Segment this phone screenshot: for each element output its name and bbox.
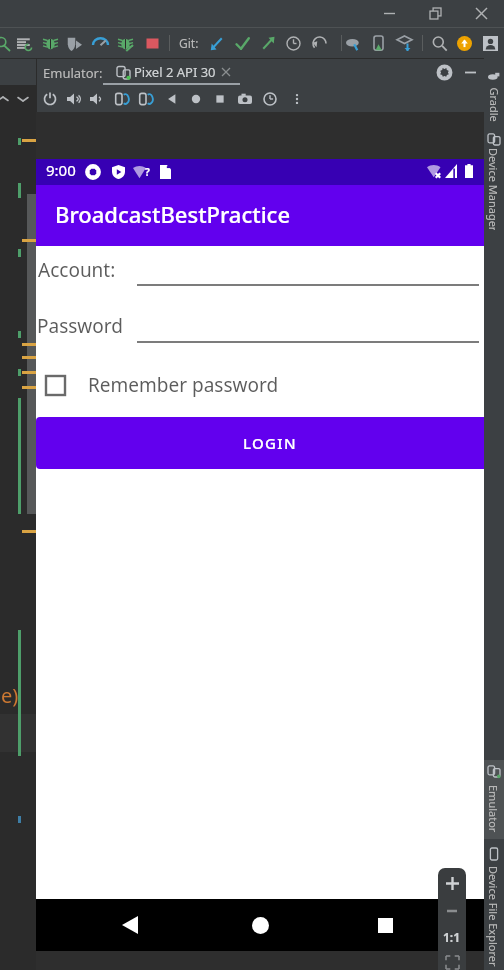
button[interactable]: Minimize [366, 0, 412, 27]
button[interactable]: Rotate right [134, 85, 158, 112]
button[interactable]: Remember password [36, 366, 504, 404]
staticText: Device File Explorer [486, 866, 501, 967]
button[interactable]: AVD Manager [366, 28, 390, 58]
button[interactable]: Updates [452, 28, 476, 58]
button[interactable]: Zoom out [438, 898, 466, 924]
button[interactable]: Hide [459, 59, 481, 85]
button[interactable]: Search [427, 28, 451, 58]
staticText: 1:1 [443, 929, 461, 945]
staticText: 9:00 [46, 160, 76, 180]
button[interactable]: Overview [208, 85, 232, 112]
button[interactable]: Device File Explorer [484, 843, 504, 970]
staticText: Emulator: [43, 64, 103, 82]
button[interactable]: Device Manager [484, 128, 504, 231]
button[interactable]: Volume down [85, 85, 109, 112]
button[interactable]: Recent apps [365, 905, 405, 945]
button[interactable]: Password [37, 313, 123, 339]
button[interactable]: Update project [204, 28, 228, 58]
button[interactable]: Restore [412, 0, 458, 27]
button[interactable]: Account: [38, 257, 116, 283]
button[interactable]: Fit to screen [438, 949, 466, 970]
button[interactable]: Actual size [438, 924, 466, 949]
staticText: Password [37, 313, 123, 339]
button[interactable]: Push [256, 28, 280, 58]
button[interactable]: Back [110, 905, 150, 945]
button[interactable]: Pixel 2 API 30 [114, 59, 234, 85]
button[interactable]: Home [240, 905, 280, 945]
staticText: Emulator [486, 785, 501, 833]
button[interactable]: LOGIN [36, 417, 504, 469]
button[interactable]: Profiler [88, 28, 112, 58]
button[interactable]: Search everywhere [0, 28, 14, 58]
button[interactable]: Close [458, 0, 504, 27]
button[interactable]: Volume up [62, 85, 86, 112]
button[interactable]: Power [38, 85, 62, 112]
staticText: Gradle [486, 87, 501, 122]
button[interactable]: History [281, 28, 305, 58]
button[interactable]: Emulator [484, 760, 504, 839]
staticText: Pixel 2 API 30 [134, 63, 216, 81]
button[interactable]: Back [160, 85, 184, 112]
button[interactable]: Snapshots [258, 85, 282, 112]
button[interactable]: More [285, 85, 309, 112]
button[interactable]: Previous [0, 85, 12, 112]
button[interactable]: Undo [307, 28, 331, 58]
button[interactable]: Take screenshot [233, 85, 257, 112]
staticText: BroadcastBestPractice [55, 199, 291, 229]
staticText: Device Manager [486, 148, 501, 230]
button[interactable]: Sync project with Gradle files [341, 28, 365, 58]
button[interactable]: Attach debugger [113, 28, 137, 58]
staticText: LOGIN [243, 433, 297, 453]
button[interactable]: Debug [38, 28, 62, 58]
button[interactable]: Commit [230, 28, 254, 58]
button[interactable]: Home [184, 85, 208, 112]
button[interactable]: SDK Manager [392, 28, 416, 58]
button[interactable]: Gradle [484, 66, 504, 124]
button[interactable]: Zoom in [438, 868, 466, 898]
button[interactable]: Rotate left [110, 85, 134, 112]
button[interactable]: Account [478, 28, 502, 58]
staticText: Git: [179, 35, 199, 51]
button[interactable]: Run [12, 28, 36, 58]
button[interactable]: Settings [433, 59, 455, 85]
button[interactable]: Profile [62, 28, 86, 58]
staticText: ? [145, 165, 150, 179]
staticText: Account: [38, 257, 116, 283]
staticText: Remember password [88, 372, 279, 398]
button[interactable]: Next [14, 85, 32, 112]
staticText: e) [1, 682, 19, 709]
button[interactable]: Stop [140, 28, 164, 58]
